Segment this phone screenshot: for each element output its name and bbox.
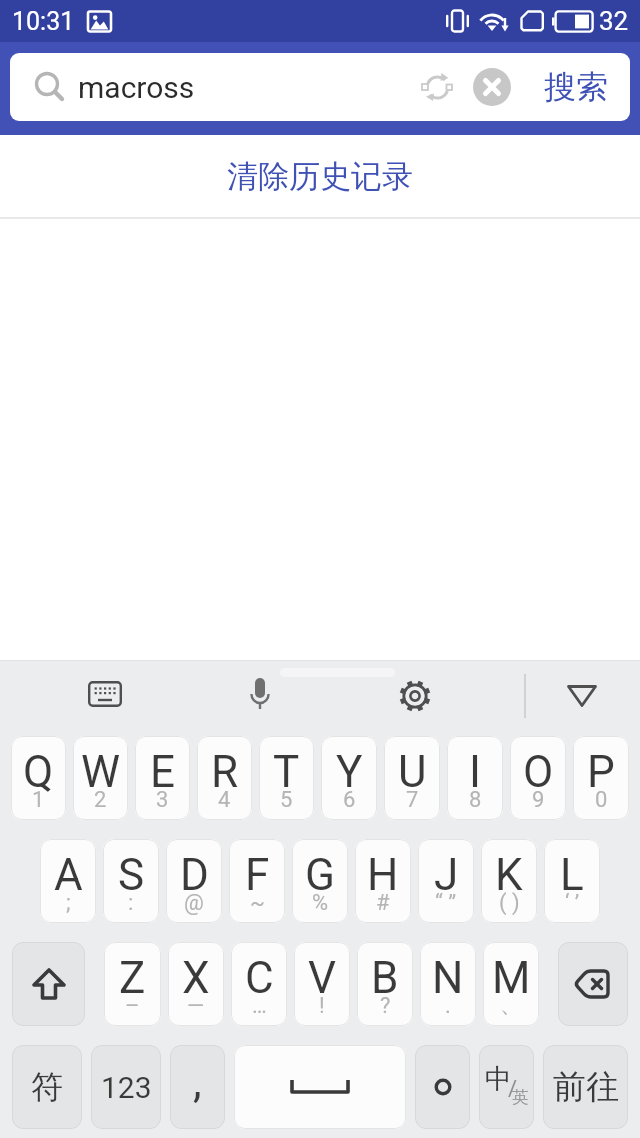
button[interactable]: G xyxy=(292,839,348,923)
button[interactable]: 123 xyxy=(91,1045,161,1129)
button[interactable]: F xyxy=(229,839,285,923)
staticText: I xyxy=(469,746,481,798)
button[interactable]: W xyxy=(73,736,128,820)
button[interactable]: B xyxy=(357,942,413,1026)
staticText: W xyxy=(81,746,121,798)
staticText: 中 xyxy=(485,1062,512,1096)
staticText: 32 xyxy=(599,6,629,36)
staticText: – xyxy=(125,993,140,1019)
staticText: 5 xyxy=(280,787,293,813)
button[interactable] xyxy=(558,942,628,1026)
button[interactable]: 搜索 xyxy=(533,53,619,121)
staticText: 0 xyxy=(595,787,608,813)
staticText: 前往 xyxy=(553,1066,619,1108)
staticText: N xyxy=(432,952,464,1004)
staticText: . xyxy=(445,993,451,1019)
button[interactable]: 清除历史记录 xyxy=(0,135,640,217)
staticText: ( ) xyxy=(499,890,520,916)
button[interactable]: N xyxy=(420,942,476,1026)
button[interactable]: P xyxy=(573,736,629,820)
button[interactable]: E xyxy=(135,736,190,820)
staticText: H xyxy=(367,849,399,901)
staticText: S xyxy=(118,849,145,901)
staticText: O xyxy=(523,746,554,798)
staticText: Q xyxy=(23,746,54,798)
staticText: 2 xyxy=(94,787,107,813)
staticText: F xyxy=(245,849,270,901)
button[interactable]: R xyxy=(197,736,252,820)
button[interactable] xyxy=(566,684,598,708)
button[interactable]: I xyxy=(447,736,503,820)
staticText: — xyxy=(187,993,205,1019)
button[interactable]: 中 xyxy=(479,1045,534,1129)
staticText: U xyxy=(398,746,427,798)
staticText: M xyxy=(492,952,531,1004)
button[interactable] xyxy=(421,71,453,103)
button[interactable]: Z xyxy=(104,942,161,1026)
staticText: 清除历史记录 xyxy=(227,157,413,196)
button[interactable] xyxy=(88,681,122,707)
button[interactable]: L xyxy=(544,839,600,923)
staticText: 6 xyxy=(343,787,356,813)
staticText: 9 xyxy=(532,787,545,813)
staticText: L xyxy=(560,849,584,901)
button[interactable]: D xyxy=(166,839,222,923)
button[interactable]: 符 xyxy=(12,1045,82,1129)
button[interactable]: Q xyxy=(11,736,66,820)
button[interactable]: O xyxy=(510,736,566,820)
staticText: P xyxy=(587,746,615,798)
staticText: “ ” xyxy=(435,890,457,916)
button[interactable]: macross xyxy=(10,53,630,121)
staticText: A xyxy=(54,849,83,901)
staticText: 、 xyxy=(500,991,522,1019)
staticText: Y xyxy=(336,746,363,798)
staticText: … xyxy=(252,993,267,1019)
button[interactable] xyxy=(12,942,85,1026)
staticText: 3 xyxy=(156,787,169,813)
button[interactable]: J xyxy=(418,839,474,923)
staticText: X xyxy=(182,952,210,1004)
staticText: 123 xyxy=(101,1070,152,1105)
staticText: ! xyxy=(319,993,325,1019)
staticText: T xyxy=(273,746,300,798)
button[interactable]: Y xyxy=(321,736,377,820)
staticText: % xyxy=(312,890,329,916)
button[interactable] xyxy=(397,678,433,714)
staticText: / xyxy=(508,1076,518,1102)
staticText: V xyxy=(308,952,337,1004)
staticText: @ xyxy=(184,890,204,916)
button[interactable] xyxy=(249,677,271,717)
button[interactable] xyxy=(415,1045,470,1129)
staticText: ~ xyxy=(250,890,265,916)
button[interactable]: M xyxy=(483,942,539,1026)
staticText: R xyxy=(211,746,239,798)
button[interactable]: A xyxy=(40,839,96,923)
button[interactable]: H xyxy=(355,839,411,923)
staticText: K xyxy=(495,849,523,901)
staticText: E xyxy=(150,746,176,798)
staticText: B xyxy=(371,952,399,1004)
button[interactable]: S xyxy=(103,839,159,923)
staticText: 符 xyxy=(31,1067,63,1107)
button[interactable]: K xyxy=(481,839,537,923)
staticText: # xyxy=(376,890,390,916)
button[interactable]: U xyxy=(384,736,440,820)
staticText: 7 xyxy=(406,787,419,813)
button[interactable]: C xyxy=(231,942,287,1026)
staticText: macross xyxy=(78,70,195,105)
button[interactable] xyxy=(473,68,511,106)
button[interactable]: , xyxy=(170,1045,225,1129)
button[interactable]: 前往 xyxy=(543,1045,628,1129)
staticText: 1 xyxy=(32,787,45,813)
staticText: 8 xyxy=(469,787,482,813)
staticText: ? xyxy=(380,993,391,1019)
staticText: ; xyxy=(66,890,71,916)
button[interactable] xyxy=(234,1045,406,1129)
staticText: ‘ ’ xyxy=(565,890,580,916)
staticText: Z xyxy=(119,952,146,1004)
staticText: 英 xyxy=(512,1087,529,1108)
button[interactable]: X xyxy=(168,942,224,1026)
button[interactable]: T xyxy=(259,736,314,820)
staticText: J xyxy=(434,849,459,901)
button[interactable]: V xyxy=(294,942,350,1026)
